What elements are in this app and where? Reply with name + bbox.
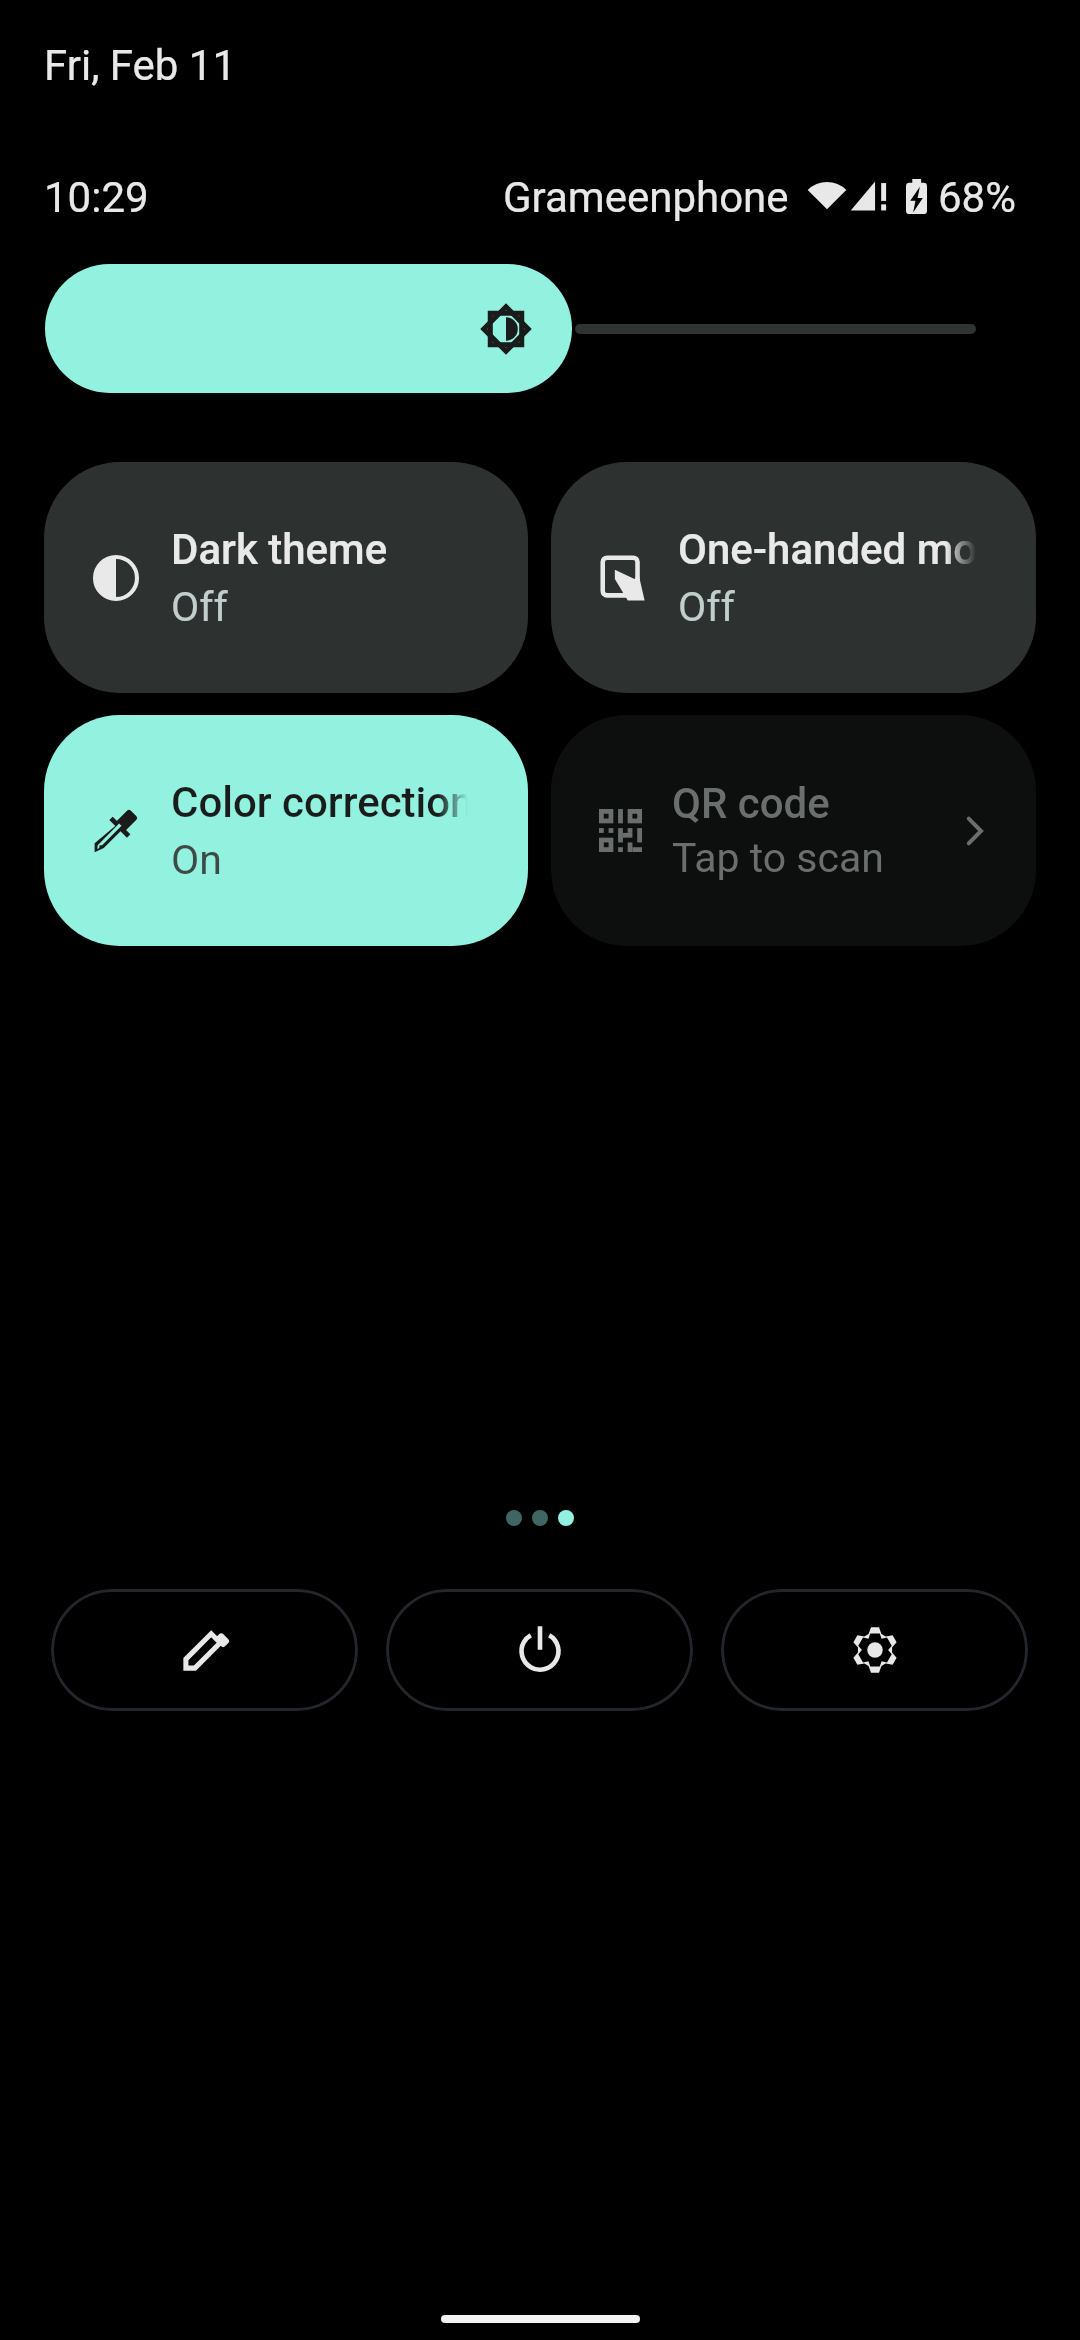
button[interactable]: Power [386, 1589, 693, 1711]
staticText: On [171, 836, 222, 884]
staticText: Off [678, 583, 735, 631]
button[interactable]: Color correction [44, 715, 528, 946]
staticText: Grameenphone [503, 173, 789, 222]
staticText: 68% [938, 173, 1016, 222]
staticText: Tap to scan [672, 834, 884, 882]
staticText: Off [171, 583, 228, 631]
staticText: Color correction [171, 778, 468, 827]
staticText: Dark theme [171, 525, 388, 574]
button[interactable]: Settings [721, 1589, 1028, 1711]
staticText: QR code [672, 779, 830, 828]
staticText: 10:29 [44, 173, 149, 222]
button[interactable]: Edit [51, 1589, 358, 1711]
staticText: One-handed mode [678, 525, 976, 574]
button[interactable]: One-handed mode [551, 462, 1036, 693]
button[interactable]: Brightness [45, 264, 572, 393]
button[interactable]: QR code [551, 715, 1036, 946]
staticText: Fri, Feb 11 [44, 41, 237, 90]
button[interactable]: Dark theme [44, 462, 528, 693]
